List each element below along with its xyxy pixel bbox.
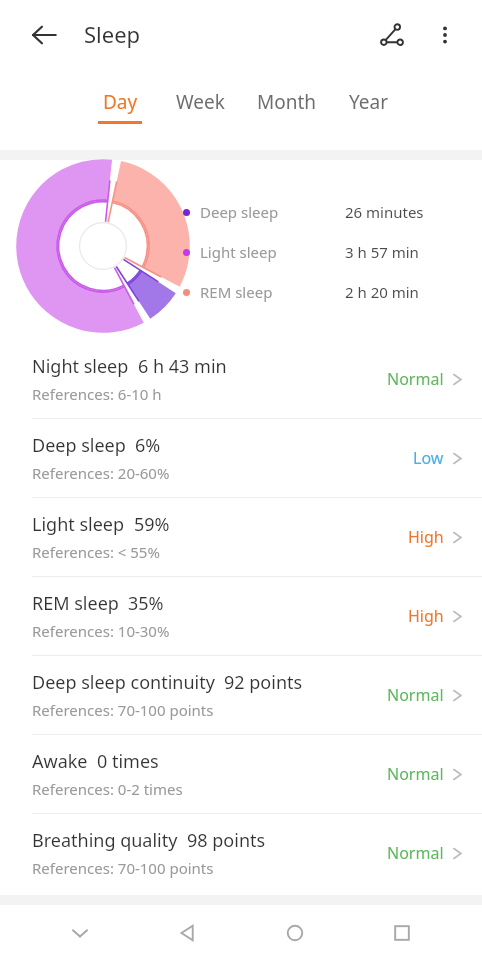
staticText: 6 h 43 min [138,354,227,379]
staticText: REM sleep [32,591,119,616]
staticText: Normal [387,368,444,390]
staticText: Week [176,89,225,115]
staticText: High [408,605,444,627]
button[interactable]: Deep sleep [0,419,482,497]
button[interactable]: Back [20,11,68,59]
staticText: 6% [135,433,161,458]
staticText: Deep sleep continuity [32,670,215,695]
staticText: High [408,526,444,548]
staticText: Deep sleep [32,433,126,458]
button[interactable]: Night sleep [0,340,482,418]
staticText: References: 6-10 h [32,384,162,404]
staticText: References: 20-60% [32,463,170,483]
staticText: Day [103,89,138,115]
button[interactable]: Share [368,11,416,59]
staticText: Year [349,89,389,115]
staticText: Night sleep [32,354,129,379]
staticText: 59% [134,512,170,537]
button[interactable]: Day [92,87,148,126]
staticText: 26 minutes [345,202,424,222]
button[interactable]: Deep sleep continuity [0,656,482,734]
staticText: Month [257,89,317,115]
staticText: 92 points [224,670,303,695]
staticText: 2 h 20 min [345,282,419,302]
staticText: Normal [387,684,444,706]
staticText: Light sleep [32,512,125,537]
staticText: Sleep [84,19,141,49]
staticText: Deep sleep [200,202,279,222]
staticText: Awake [32,749,88,774]
staticText: References: < 55% [32,542,160,562]
staticText: References: 70-100 points [32,858,214,878]
staticText: References: 70-100 points [32,700,214,720]
staticText: Normal [387,842,444,864]
staticText: 3 h 57 min [345,242,419,262]
button[interactable]: REM sleep [0,577,482,655]
button[interactable]: Recents [374,905,430,960]
button[interactable]: Month [251,87,323,126]
staticText: Light sleep [200,242,277,262]
staticText: Normal [387,763,444,785]
staticText: REM sleep [200,282,273,302]
button[interactable]: Hide keyboard [52,905,108,960]
button[interactable]: Breathing quality [0,814,482,892]
button[interactable]: Week [170,87,231,126]
staticText: Breathing quality [32,828,178,853]
button[interactable]: Awake [0,735,482,813]
button[interactable]: More options [422,12,468,58]
staticText: References: 10-30% [32,621,170,641]
button[interactable]: Light sleep [0,498,482,576]
button[interactable]: Back [159,905,215,960]
staticText: Low [413,447,444,469]
staticText: 98 points [187,828,266,853]
staticText: 35% [128,591,164,616]
staticText: 0 times [97,749,159,774]
staticText: References: 0-2 times [32,779,183,799]
button[interactable]: Home [267,905,323,960]
button[interactable]: Year [343,87,395,126]
